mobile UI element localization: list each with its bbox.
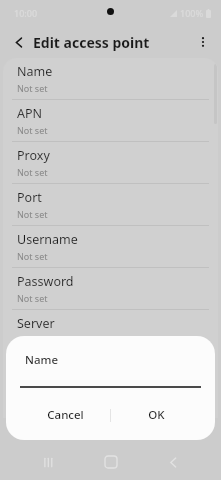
button[interactable]: Port	[3, 184, 218, 225]
staticText: Password	[17, 273, 74, 290]
staticText: Not set	[17, 208, 48, 220]
staticText: OK	[148, 407, 165, 423]
staticText: Proxy	[17, 147, 50, 164]
button[interactable]: Name	[3, 58, 218, 99]
staticText: 100%	[180, 7, 204, 19]
staticText: Not set	[17, 292, 48, 304]
button[interactable]: APN	[3, 100, 218, 141]
button[interactable]: Home	[96, 447, 126, 477]
staticText: Not set	[17, 82, 48, 94]
button[interactable]: Proxy	[3, 142, 218, 183]
staticText: Name	[25, 352, 58, 368]
button[interactable]: Recent apps	[33, 447, 63, 477]
button[interactable]: Username	[3, 226, 218, 267]
staticText: Cancel	[47, 407, 84, 423]
button[interactable]: Server	[3, 310, 218, 351]
button[interactable]: Password	[3, 268, 218, 309]
button[interactable]: Cancel	[20, 402, 110, 428]
staticText: Edit access point	[33, 33, 150, 52]
staticText: Not set	[17, 334, 48, 346]
staticText: Not set	[17, 124, 48, 136]
staticText: 10:00	[14, 7, 38, 19]
staticText: APN	[17, 105, 43, 122]
button[interactable]: Back	[8, 31, 30, 53]
staticText: Not set	[17, 166, 48, 178]
staticText: Server	[17, 315, 55, 332]
staticText: Port	[17, 189, 42, 206]
button[interactable]: OK	[111, 402, 201, 428]
staticText: Not set	[17, 250, 48, 262]
staticText: Name	[17, 63, 53, 80]
staticText: Username	[17, 231, 78, 248]
button[interactable]: More options	[191, 30, 215, 54]
